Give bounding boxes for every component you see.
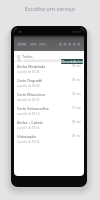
button[interactable]: Ver estabelecimento [61, 59, 83, 64]
button[interactable]: Barba Modelada [14, 62, 84, 76]
staticText: Corte Masculino [17, 92, 45, 97]
staticText: 60 min [72, 120, 81, 124]
staticText: 30 min [72, 64, 81, 68]
staticText: 30 min [72, 92, 81, 96]
staticText: a partir de R$ 35 [17, 98, 40, 102]
staticText: 15 min [72, 106, 81, 110]
staticText: Barba + Cabelo [17, 120, 43, 125]
staticText: Corte Degradê [17, 78, 43, 83]
staticText: Hidratação [17, 134, 36, 139]
staticText: a partir de R$ 45 [17, 140, 40, 144]
button[interactable]: Corte Sobrancelha [14, 104, 84, 118]
staticText: 40 min [72, 134, 81, 138]
staticText: Escolha um serviço [25, 5, 75, 13]
staticText: a partir de R$ 40 [17, 84, 40, 88]
staticText: Meu estabelecimento [61, 60, 83, 64]
staticText: Barba Modelada [17, 64, 46, 69]
staticText: a partir de R$ 15 [17, 112, 40, 116]
staticText: a partir de R$ 55 [17, 126, 40, 130]
staticText: 45 min [72, 78, 81, 82]
button[interactable]: Todos [14, 51, 84, 61]
staticText: Todos [22, 54, 33, 59]
button[interactable]: Corte Degradê [14, 76, 84, 90]
staticText: a partir de R$ 25 [17, 70, 40, 74]
button[interactable]: Barba + Cabelo [14, 118, 84, 132]
button[interactable]: Corte Masculino [14, 90, 84, 104]
button[interactable]: Hidratação [14, 132, 84, 146]
staticText: Corte Sobrancelha [17, 106, 49, 111]
